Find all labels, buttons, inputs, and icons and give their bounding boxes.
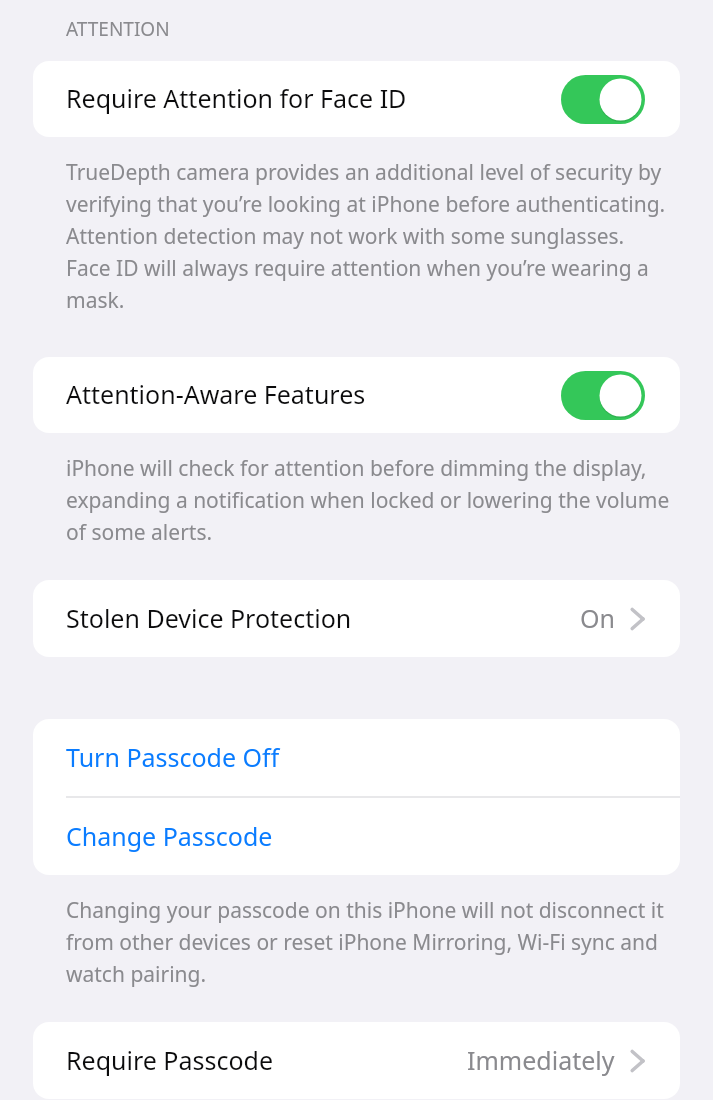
staticText: Stolen Device Protection: [66, 604, 352, 634]
staticText: ATTENTION: [66, 16, 170, 42]
staticText: Attention-Aware Features: [66, 380, 366, 410]
button[interactable]: Attention-Aware Features: [33, 357, 680, 433]
staticText: Turn Passcode Off: [66, 743, 280, 773]
staticText: TrueDepth camera provides an additional …: [66, 155, 673, 315]
button[interactable]: Stolen Device Protection: [33, 580, 680, 657]
staticText: Change Passcode: [66, 822, 273, 852]
button[interactable]: Change Passcode: [33, 798, 680, 875]
button[interactable]: Turn Passcode Off: [33, 719, 680, 796]
staticText: Require Passcode: [66, 1046, 274, 1076]
staticText: Immediately: [467, 1046, 615, 1076]
staticText: Changing your passcode on this iPhone wi…: [66, 893, 673, 989]
button[interactable]: Require Attention for Face ID: [33, 61, 680, 137]
staticText: iPhone will check for attention before d…: [66, 451, 673, 547]
button[interactable]: Require Passcode: [33, 1022, 680, 1099]
button[interactable]: Require Attention for Face ID: [561, 75, 645, 124]
button[interactable]: Attention-Aware Features: [561, 371, 645, 420]
staticText: On: [580, 604, 615, 634]
staticText: Require Attention for Face ID: [66, 84, 407, 114]
